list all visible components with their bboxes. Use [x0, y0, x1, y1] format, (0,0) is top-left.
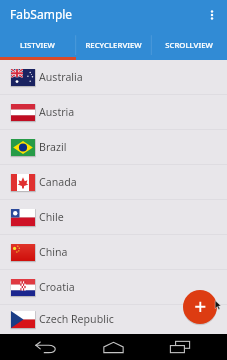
staticText: Chile: [39, 210, 64, 224]
button[interactable]: Back: [26, 336, 66, 358]
button[interactable]: Brazil: [0, 130, 227, 165]
button[interactable]: Czech Republic: [0, 305, 227, 334]
button[interactable]: Chile: [0, 200, 227, 235]
staticText: Australia: [39, 70, 83, 84]
button[interactable]: Australia: [0, 60, 227, 95]
button[interactable]: Home: [93, 336, 133, 358]
button[interactable]: SCROLLVIEW: [151, 29, 227, 60]
staticText: FabSample: [10, 6, 73, 22]
button[interactable]: Add: [183, 290, 217, 324]
button[interactable]: LISTVIEW: [0, 29, 75, 60]
staticText: China: [39, 245, 68, 259]
staticText: RECYCLERVIEW: [85, 40, 142, 51]
staticText: Croatia: [39, 280, 75, 294]
button[interactable]: China: [0, 235, 227, 270]
button[interactable]: Canada: [0, 165, 227, 200]
staticText: Canada: [39, 175, 77, 189]
staticText: SCROLLVIEW: [165, 40, 213, 51]
staticText: Czech Republic: [39, 312, 114, 326]
button[interactable]: Austria: [0, 95, 227, 130]
button[interactable]: RECYCLERVIEW: [75, 29, 151, 60]
button[interactable]: Croatia: [0, 270, 227, 305]
staticText: Brazil: [39, 140, 67, 154]
staticText: Austria: [39, 105, 75, 119]
staticText: LISTVIEW: [20, 40, 55, 51]
button[interactable]: More options: [201, 4, 223, 26]
button[interactable]: Recents: [160, 336, 200, 358]
